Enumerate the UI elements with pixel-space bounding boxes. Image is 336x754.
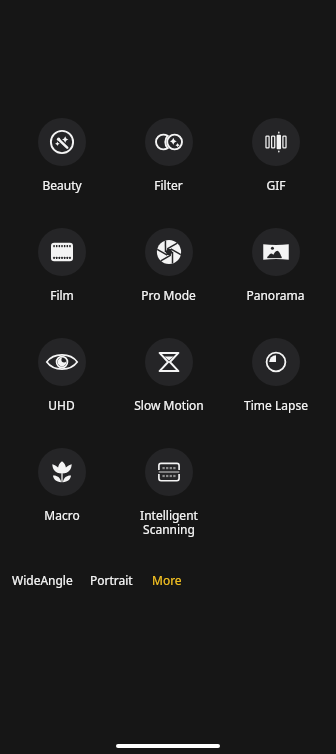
staticText: Portrait xyxy=(90,572,133,588)
button[interactable]: UHD xyxy=(8,338,115,413)
button[interactable]: WideAngle xyxy=(6,564,79,596)
button[interactable]: Macro xyxy=(8,448,115,523)
staticText: UHD xyxy=(48,397,75,413)
button[interactable]: Film xyxy=(8,228,115,303)
staticText: GIF xyxy=(266,177,286,193)
button[interactable]: Panorama xyxy=(222,228,329,303)
button[interactable]: More xyxy=(146,564,188,596)
staticText: More xyxy=(152,572,182,588)
staticText: Panorama xyxy=(246,287,305,303)
staticText: Time Lapse xyxy=(244,397,308,413)
staticText: WideAngle xyxy=(12,572,73,588)
button[interactable]: Portrait xyxy=(84,564,139,596)
button[interactable]: Pro Mode xyxy=(115,228,222,303)
button[interactable]: Time Lapse xyxy=(222,338,329,413)
staticText: Intelligent Scanning xyxy=(140,507,198,538)
staticText: Pro Mode xyxy=(141,287,196,303)
staticText: Beauty xyxy=(42,177,82,193)
staticText: Macro xyxy=(44,507,80,523)
staticText: Filter xyxy=(154,177,183,193)
button[interactable]: Slow Motion xyxy=(115,338,222,413)
button[interactable]: Filter xyxy=(115,118,222,193)
button[interactable]: GIF xyxy=(222,118,329,193)
button[interactable]: Intelligent Scanning xyxy=(115,448,222,538)
button[interactable]: Beauty xyxy=(8,118,115,193)
staticText: Slow Motion xyxy=(134,397,204,413)
staticText: Film xyxy=(50,287,74,303)
